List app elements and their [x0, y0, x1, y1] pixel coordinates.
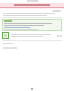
button[interactable]: Image preview — [2, 32, 62, 39]
button[interactable] — [2, 19, 62, 31]
other: Image preview — [2, 32, 9, 39]
button[interactable] — [0, 3, 64, 7]
button[interactable]: More options — [52, 10, 61, 12]
